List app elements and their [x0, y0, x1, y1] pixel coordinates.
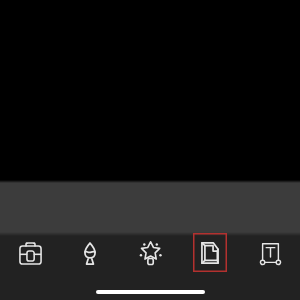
button[interactable]: Page — [180, 233, 240, 273]
button[interactable]: Briefcase — [0, 233, 60, 273]
button[interactable]: Text — [240, 233, 300, 273]
button[interactable]: Brush — [60, 233, 120, 273]
button[interactable]: Shapes — [120, 233, 180, 273]
